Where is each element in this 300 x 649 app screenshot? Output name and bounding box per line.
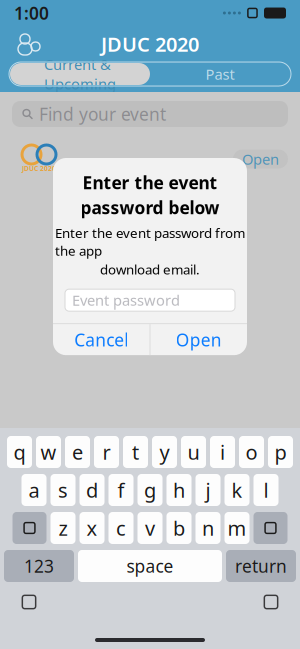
button[interactable]: z [50, 512, 75, 544]
staticText: g [144, 477, 156, 503]
button[interactable]: c [108, 512, 133, 544]
staticText: i [220, 439, 225, 465]
button[interactable]: return [226, 550, 296, 582]
button[interactable]: Open [233, 149, 288, 168]
staticText: k [231, 477, 242, 503]
button[interactable]: Search attendees [11, 29, 47, 59]
staticText: n [202, 515, 214, 541]
staticText: z [58, 515, 67, 541]
button[interactable]: b [166, 512, 191, 544]
button[interactable]: Dictation [256, 589, 286, 615]
button[interactable]: o [239, 436, 264, 468]
staticText: l [263, 477, 268, 503]
staticText: Find your event [39, 102, 166, 125]
button[interactable]: Shift [12, 512, 46, 544]
button[interactable]: x [79, 512, 104, 544]
button[interactable]: r [94, 436, 119, 468]
staticText: o [245, 439, 257, 465]
staticText: h [173, 477, 185, 503]
button[interactable]: Emoji [14, 589, 44, 615]
button[interactable]: f [108, 474, 133, 506]
staticText: Event password [72, 290, 180, 310]
staticText: 123 [24, 554, 54, 577]
button[interactable]: Cancel [53, 324, 149, 355]
button[interactable]: v [137, 512, 162, 544]
staticText: b [173, 515, 185, 541]
staticText: u [187, 439, 199, 465]
staticText: q [13, 439, 25, 465]
staticText: f [117, 477, 124, 503]
staticText: download email. [100, 260, 200, 278]
staticText: e [72, 439, 83, 465]
staticText: return [235, 554, 287, 577]
staticText: s [58, 477, 68, 503]
staticText: p [274, 439, 286, 465]
button[interactable]: Open [150, 324, 247, 355]
staticText: j [205, 477, 210, 503]
button[interactable]: d [79, 474, 104, 506]
button[interactable]: space [78, 550, 222, 582]
staticText: JDUC 2020 [101, 31, 199, 57]
button[interactable]: 123 [4, 550, 74, 582]
staticText: space [126, 554, 173, 577]
staticText: r [102, 439, 110, 465]
button[interactable]: e [65, 436, 90, 468]
button[interactable]: s [50, 474, 75, 506]
staticText: y [159, 439, 169, 465]
staticText: w [40, 439, 56, 465]
staticText: x [86, 515, 97, 541]
staticText: a [28, 477, 39, 503]
button[interactable]: g [137, 474, 162, 506]
staticText: Past [205, 64, 234, 84]
button[interactable]: Delete [253, 512, 287, 544]
staticText: 1:00 [14, 1, 49, 24]
staticText: password below [80, 196, 219, 219]
button[interactable]: h [166, 474, 191, 506]
button[interactable]: i [210, 436, 235, 468]
button[interactable]: l [253, 474, 278, 506]
button[interactable]: a [21, 474, 46, 506]
button[interactable]: Find your event [12, 101, 288, 127]
staticText: JDUC 2020 [22, 164, 56, 173]
button[interactable]: w [36, 436, 61, 468]
button[interactable]: Current & Upcoming [10, 63, 150, 85]
staticText: Enter the event [82, 171, 217, 194]
button[interactable]: p [268, 436, 293, 468]
button[interactable]: t [123, 436, 148, 468]
button[interactable]: n [195, 512, 220, 544]
staticText: Enter the event password from the app [55, 224, 245, 259]
button[interactable]: Past [150, 63, 290, 85]
staticText: Cancel [74, 328, 128, 351]
button[interactable]: j [195, 474, 220, 506]
staticText: c [116, 515, 126, 541]
staticText: d [86, 477, 98, 503]
staticText: t [132, 439, 139, 465]
button[interactable]: q [7, 436, 32, 468]
staticText: m [227, 515, 246, 541]
button[interactable]: y [152, 436, 177, 468]
staticText: Open [242, 149, 279, 169]
button[interactable]: u [181, 436, 206, 468]
staticText: Open [176, 328, 222, 351]
button[interactable]: k [224, 474, 249, 506]
button[interactable]: m [224, 512, 249, 544]
staticText: v [145, 515, 155, 541]
staticText: Current & Upcoming [44, 54, 116, 93]
